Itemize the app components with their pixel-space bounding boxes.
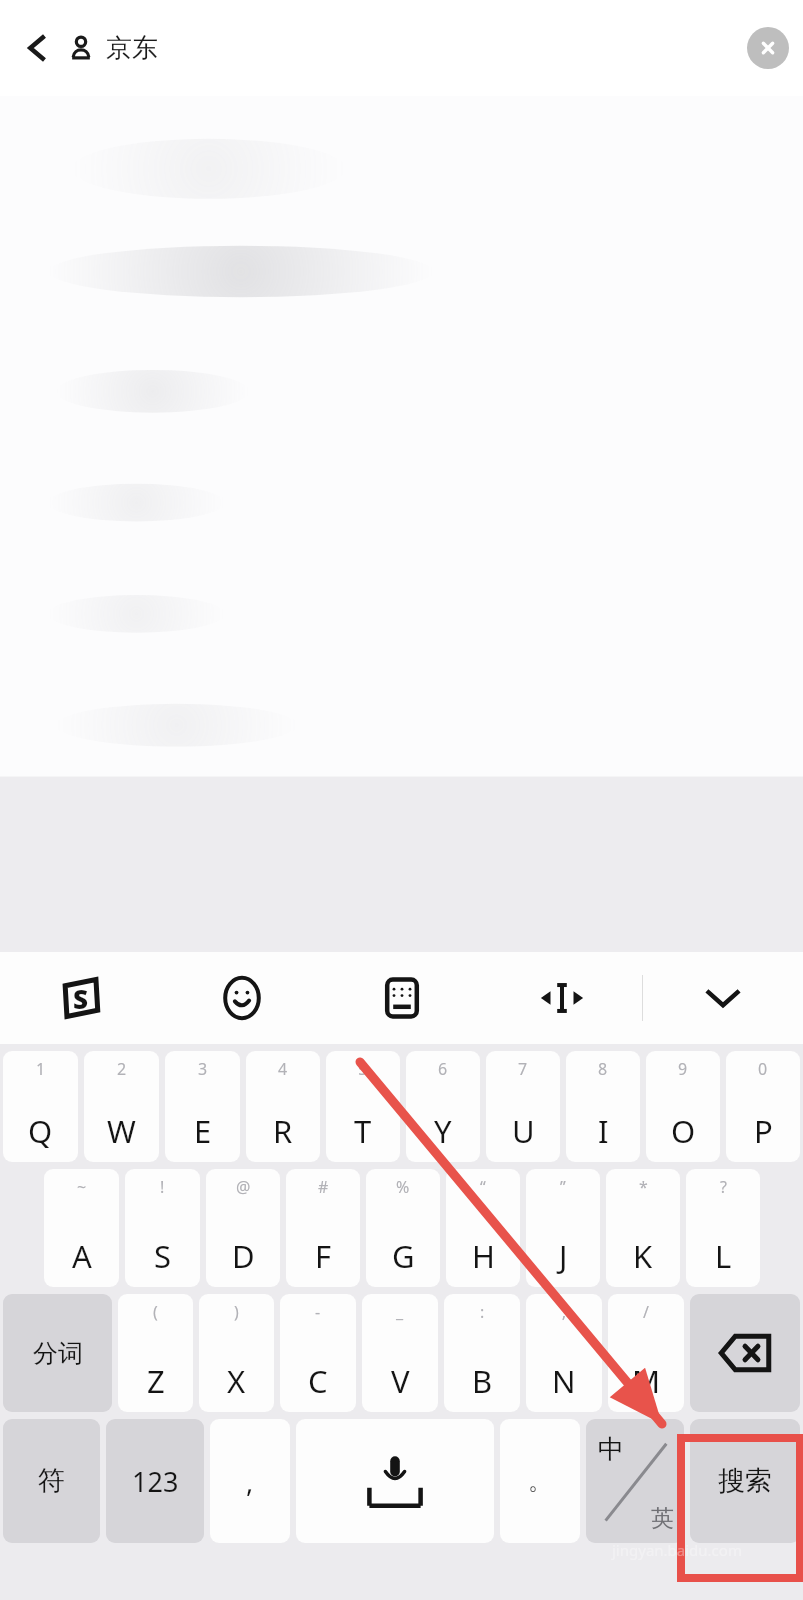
- button[interactable]: #: [286, 1169, 360, 1287]
- button[interactable]: %: [366, 1169, 440, 1287]
- staticText: ”: [560, 1176, 566, 1198]
- staticText: Z: [147, 1360, 165, 1402]
- button[interactable]: 1: [3, 1051, 78, 1162]
- button[interactable]: ,: [210, 1419, 290, 1543]
- staticText: J: [559, 1235, 568, 1277]
- button[interactable]: 4: [246, 1051, 320, 1162]
- button[interactable]: -: [280, 1294, 356, 1412]
- staticText: Q: [28, 1110, 53, 1152]
- staticText: 中: [598, 1433, 624, 1466]
- staticText: 2: [117, 1058, 127, 1080]
- button[interactable]: 3: [165, 1051, 240, 1162]
- button[interactable]: “: [446, 1169, 520, 1287]
- staticText: jingyan.baidu.com: [612, 1540, 742, 1560]
- button[interactable]: 符: [3, 1419, 100, 1543]
- staticText: A: [72, 1235, 92, 1277]
- staticText: B: [472, 1360, 493, 1402]
- button[interactable]: 6: [406, 1051, 480, 1162]
- button[interactable]: 7: [486, 1051, 560, 1162]
- staticText: L: [715, 1235, 732, 1277]
- button[interactable]: 。: [500, 1419, 580, 1543]
- staticText: K: [633, 1235, 653, 1277]
- button[interactable]: _: [362, 1294, 438, 1412]
- button[interactable]: 2: [84, 1051, 159, 1162]
- button[interactable]: Back: [14, 25, 60, 71]
- staticText: *: [639, 1176, 648, 1198]
- staticText: U: [512, 1110, 535, 1152]
- staticText: :: [480, 1301, 485, 1323]
- button[interactable]: Move cursor: [482, 952, 642, 1044]
- staticText: G: [392, 1235, 415, 1277]
- button[interactable]: 8: [566, 1051, 640, 1162]
- staticText: O: [671, 1110, 696, 1152]
- button[interactable]: (: [118, 1294, 193, 1412]
- staticText: Y: [434, 1110, 452, 1152]
- button[interactable]: 0: [726, 1051, 800, 1162]
- staticText: V: [391, 1360, 410, 1402]
- staticText: 英: [651, 1504, 674, 1533]
- staticText: /: [643, 1301, 649, 1323]
- staticText: %: [396, 1176, 410, 1198]
- staticText: 1: [36, 1058, 46, 1080]
- staticText: “: [480, 1176, 486, 1198]
- staticText: 8: [598, 1058, 608, 1080]
- staticText: 7: [518, 1058, 528, 1080]
- staticText: T: [354, 1110, 372, 1152]
- staticText: 京东: [106, 32, 158, 65]
- staticText: E: [194, 1110, 212, 1152]
- staticText: 6: [438, 1058, 448, 1080]
- button[interactable]: ?: [686, 1169, 760, 1287]
- button[interactable]: 123: [106, 1419, 204, 1543]
- staticText: W: [107, 1110, 136, 1152]
- button[interactable]: 分词: [3, 1294, 112, 1412]
- button[interactable]: @: [206, 1169, 280, 1287]
- button[interactable]: ;: [526, 1294, 602, 1412]
- button[interactable]: Hide keyboard: [643, 952, 803, 1044]
- button[interactable]: !: [125, 1169, 200, 1287]
- staticText: 符: [38, 1464, 65, 1498]
- button[interactable]: 9: [646, 1051, 720, 1162]
- staticText: S: [73, 981, 89, 1016]
- staticText: 9: [678, 1058, 688, 1080]
- staticText: (: [153, 1301, 158, 1323]
- staticText: _: [396, 1301, 404, 1323]
- button[interactable]: Emoji: [161, 952, 322, 1044]
- staticText: ,: [246, 1463, 254, 1500]
- button[interactable]: *: [606, 1169, 680, 1287]
- staticText: F: [315, 1235, 332, 1277]
- staticText: 分词: [33, 1338, 83, 1369]
- staticText: P: [754, 1110, 773, 1152]
- staticText: I: [598, 1110, 609, 1152]
- button[interactable]: 搜索: [690, 1419, 800, 1543]
- staticText: M: [632, 1360, 661, 1402]
- button[interactable]: Close: [747, 27, 789, 69]
- staticText: 0: [758, 1058, 768, 1080]
- staticText: X: [227, 1360, 246, 1402]
- staticText: ~: [77, 1176, 87, 1198]
- staticText: ;: [562, 1301, 567, 1323]
- staticText: ): [234, 1301, 239, 1323]
- staticText: 123: [132, 1463, 179, 1500]
- staticText: -: [315, 1301, 321, 1323]
- staticText: !: [160, 1176, 165, 1198]
- button[interactable]: 5: [326, 1051, 400, 1162]
- button[interactable]: 中: [586, 1419, 684, 1543]
- staticText: 5: [358, 1058, 368, 1080]
- button[interactable]: Keyboard layout: [322, 952, 482, 1044]
- staticText: @: [236, 1176, 251, 1198]
- button[interactable]: ~: [44, 1169, 119, 1287]
- button[interactable]: :: [444, 1294, 520, 1412]
- button[interactable]: ): [199, 1294, 274, 1412]
- button[interactable]: Sogou logo: [0, 952, 161, 1044]
- staticText: N: [552, 1360, 576, 1402]
- staticText: R: [273, 1110, 293, 1152]
- staticText: 搜索: [718, 1464, 772, 1498]
- staticText: S: [154, 1235, 172, 1277]
- button[interactable]: ”: [526, 1169, 600, 1287]
- staticText: C: [308, 1360, 328, 1402]
- staticText: ?: [720, 1176, 727, 1198]
- button[interactable]: Space and voice input: [296, 1419, 494, 1543]
- button[interactable]: Backspace: [690, 1294, 800, 1412]
- staticText: H: [472, 1235, 495, 1277]
- button[interactable]: /: [608, 1294, 684, 1412]
